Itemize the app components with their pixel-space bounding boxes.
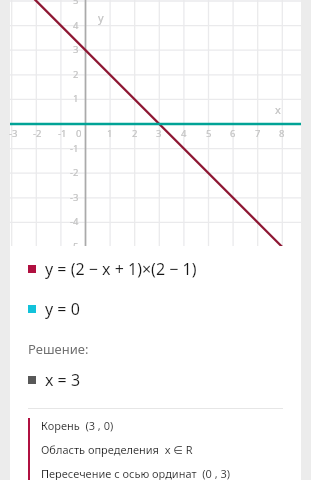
staticText: y — [98, 10, 104, 25]
button[interactable]: y = 0 — [10, 294, 301, 324]
staticText: 2 — [73, 68, 79, 81]
staticText: -2 — [70, 166, 79, 179]
staticText: -3 — [70, 191, 79, 204]
staticText: 6 — [230, 127, 236, 140]
staticText: Пересечение с осью ординат (0 , 3) — [41, 466, 231, 480]
staticText: Решение: — [28, 340, 89, 358]
staticText: Область определения x ∈ R — [41, 442, 193, 457]
staticText: -1 — [70, 142, 79, 155]
staticText: 1 — [73, 92, 79, 105]
button[interactable]: -3 — [10, 0, 301, 246]
staticText: 3 — [156, 127, 162, 140]
staticText: 2 — [132, 127, 138, 140]
staticText: 8 — [279, 127, 285, 140]
staticText: -2 — [33, 127, 42, 140]
staticText: y = (2 − x + 1)×(2 − 1) — [45, 258, 197, 280]
staticText: y = 0 — [45, 298, 80, 320]
staticText: Корень (3 , 0) — [41, 418, 114, 433]
staticText: 0 — [76, 127, 82, 140]
staticText: 4 — [73, 19, 79, 32]
staticText: x — [275, 102, 281, 117]
staticText: -5 — [70, 240, 79, 253]
staticText: 5 — [206, 127, 212, 140]
staticText: -4 — [70, 215, 79, 228]
staticText: -1 — [58, 127, 67, 140]
staticText: 1 — [107, 127, 113, 140]
staticText: -3 — [9, 127, 18, 140]
staticText: 3 — [73, 43, 79, 56]
staticText: x = 3 — [45, 369, 81, 391]
button[interactable]: x = 3 — [10, 367, 301, 393]
staticText: 7 — [255, 127, 261, 140]
staticText: 5 — [73, 0, 79, 7]
staticText: 4 — [181, 127, 187, 140]
button[interactable]: y = (2 − x + 1)×(2 − 1) — [10, 254, 301, 284]
